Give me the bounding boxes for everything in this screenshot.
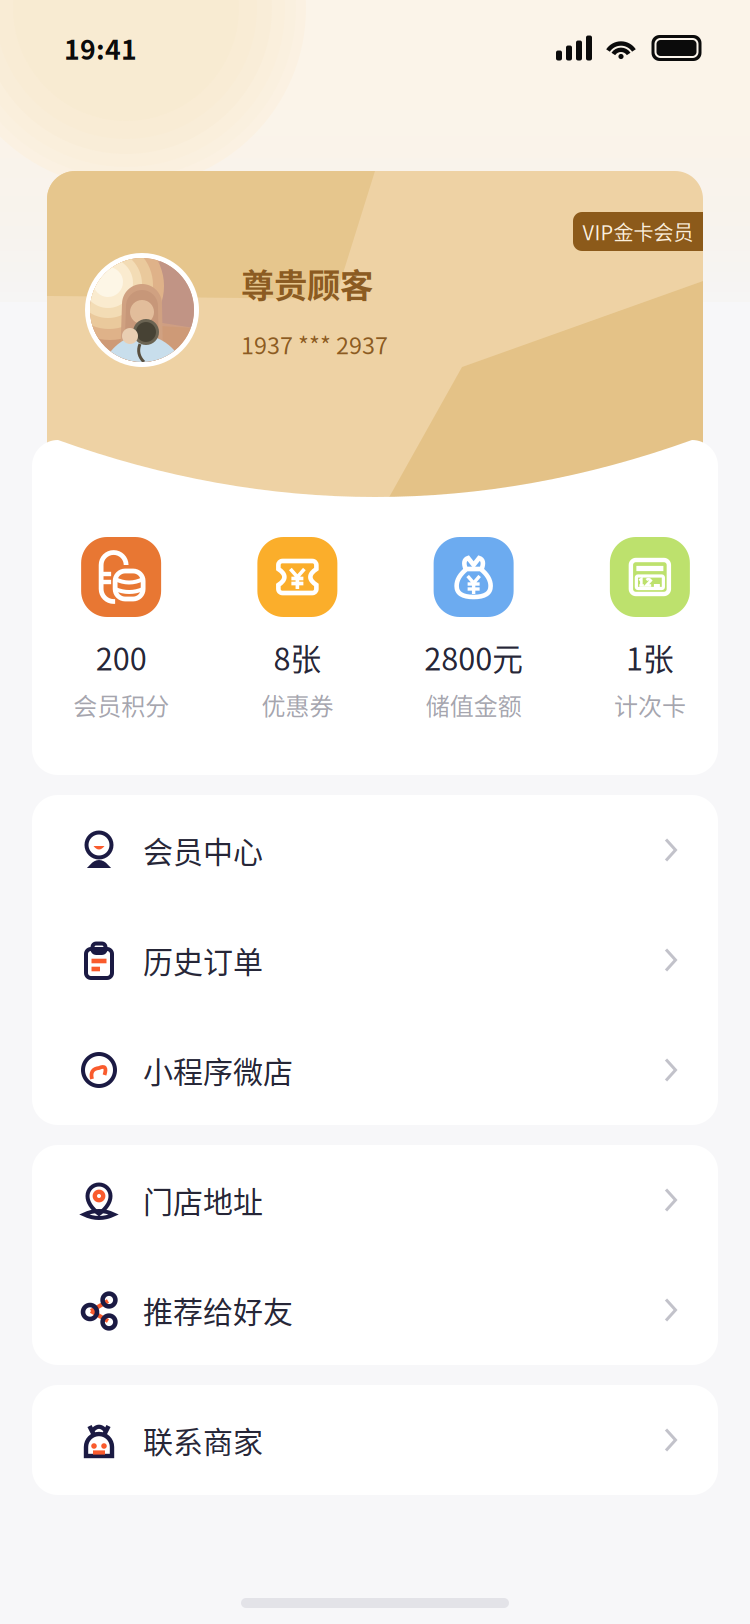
button[interactable]: 历史订单: [32, 905, 718, 1015]
staticText: 2800元: [424, 635, 523, 679]
staticText: 19:41: [64, 29, 137, 67]
staticText: 历史订单: [143, 938, 263, 982]
button[interactable]: 会员中心: [32, 795, 718, 905]
staticText: 计次卡: [614, 687, 686, 722]
staticText: 尊贵顾客: [241, 259, 373, 307]
button[interactable]: 200: [33, 537, 209, 722]
staticText: 优惠券: [261, 687, 333, 722]
button[interactable]: 门店地址: [32, 1145, 718, 1255]
button[interactable]: 推荐给好友: [32, 1255, 718, 1365]
button[interactable]: 1张: [562, 537, 738, 722]
staticText: 200: [96, 635, 147, 679]
staticText: 门店地址: [143, 1178, 263, 1222]
staticText: 推荐给好友: [143, 1288, 293, 1332]
staticText: 小程序微店: [143, 1048, 293, 1092]
staticText: 1937 *** 2937: [241, 327, 388, 361]
staticText: 1张: [626, 635, 674, 679]
staticText: 会员中心: [143, 828, 263, 872]
button[interactable]: 2800元: [385, 537, 562, 722]
staticText: 会员积分: [73, 687, 169, 722]
button[interactable]: 联系商家: [32, 1385, 718, 1495]
staticText: 储值金额: [426, 687, 522, 722]
staticText: VIP金卡会员: [582, 217, 693, 246]
button[interactable]: 8张: [209, 537, 385, 722]
staticText: 8张: [273, 635, 321, 679]
button[interactable]: VIP金卡会员: [573, 212, 703, 251]
button[interactable]: 小程序微店: [32, 1015, 718, 1125]
staticText: 联系商家: [143, 1418, 263, 1462]
